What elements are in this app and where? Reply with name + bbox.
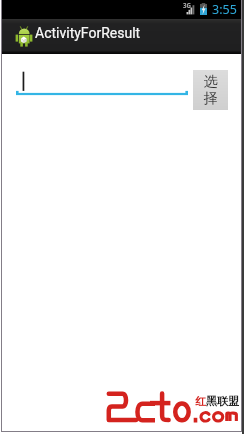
staticText: 3:55 [212,1,237,18]
staticText: 红 [195,394,206,408]
staticText: 3G [183,1,192,9]
staticText: 黑联盟 [206,394,239,408]
button[interactable]: 选择 [193,70,228,110]
staticText: ActivityForResult [35,25,141,41]
button[interactable] [16,70,188,112]
staticText: 选择 [203,73,218,107]
